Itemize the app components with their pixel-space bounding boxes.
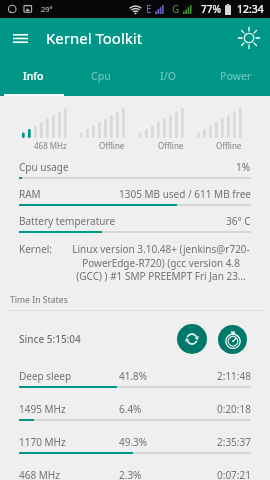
staticText: Kernel Toolkit — [46, 28, 143, 48]
staticText: 2:35:37 — [217, 435, 251, 449]
staticText: Deep sleep — [19, 369, 119, 383]
staticText: G — [172, 2, 180, 16]
button[interactable]: Cpu — [67, 58, 134, 96]
staticText: Time In States — [10, 294, 68, 306]
staticText: 41.8% — [119, 369, 217, 383]
staticText: 0:20:18 — [217, 402, 251, 416]
staticText: 36° C — [226, 214, 251, 228]
staticText: E — [146, 2, 152, 16]
staticText: Offline — [158, 140, 184, 151]
button[interactable]: Navigation menu — [0, 18, 41, 58]
staticText: RAM — [19, 187, 41, 201]
staticText: 49.3% — [119, 435, 217, 449]
staticText: Battery temperature — [19, 214, 116, 228]
staticText: 468 MHz — [19, 468, 119, 480]
staticText: Linux version 3.10.48+ (jenkins@r720-Pow… — [71, 242, 251, 283]
button[interactable]: 1170 MHz — [0, 430, 270, 463]
staticText: 1% — [236, 160, 251, 174]
button[interactable]: Brightness — [228, 18, 270, 58]
staticText: 1495 MHz — [19, 402, 119, 416]
staticText: Info — [23, 69, 44, 83]
staticText: Kernel: — [19, 242, 71, 256]
staticText: Since 5:15:04 — [19, 332, 81, 346]
staticText: Offline — [99, 140, 125, 151]
staticText: 12:34 — [237, 2, 264, 16]
staticText: 6.4% — [119, 402, 217, 416]
button[interactable]: I/O — [134, 58, 202, 96]
button[interactable]: Refresh — [177, 324, 207, 354]
staticText: 0:07:21 — [217, 468, 251, 480]
button[interactable]: Power — [202, 58, 270, 96]
staticText: Cpu usage — [19, 160, 69, 174]
staticText: 29° — [41, 4, 53, 14]
staticText: 1305 MB used / 611 MB free — [119, 187, 251, 201]
staticText: 468 MHz — [34, 140, 67, 151]
button[interactable]: Timer — [218, 325, 247, 354]
button[interactable]: Deep sleep — [0, 364, 270, 397]
staticText: 77% — [201, 2, 221, 16]
staticText: Offline — [216, 140, 242, 151]
staticText: 2.3% — [119, 468, 217, 480]
staticText: Cpu — [91, 69, 111, 83]
button[interactable]: Info — [0, 58, 67, 96]
staticText: 1170 MHz — [19, 435, 119, 449]
staticText: 2:11:48 — [217, 369, 251, 383]
button[interactable]: 468 MHz — [0, 463, 270, 480]
staticText: I/O — [160, 69, 176, 83]
staticText: Power — [220, 69, 252, 83]
button[interactable]: 1495 MHz — [0, 397, 270, 430]
